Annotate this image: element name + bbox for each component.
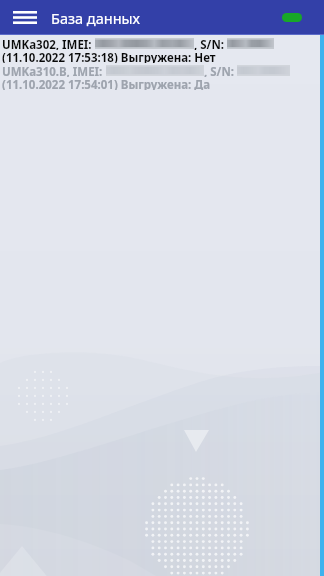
staticText: UMKa310.B, IMEI:: [2, 64, 103, 77]
staticText: База данных: [51, 8, 140, 28]
button[interactable]: Connection status: [282, 13, 302, 22]
staticText: UMKa302, IMEI:: [2, 37, 92, 50]
button[interactable]: Open navigation menu: [8, 1, 42, 34]
button[interactable]: UMKa302, IMEI:: [2, 38, 324, 64]
staticText: (11.10.2022 17:53:18) Выгружена: Нет: [2, 50, 216, 63]
staticText: , S/N:: [204, 64, 234, 77]
button[interactable]: UMKa310.B, IMEI:: [2, 65, 324, 91]
staticText: , S/N:: [194, 37, 224, 50]
staticText: (11.10.2022 17:54:01) Выгружена: Да: [2, 77, 211, 90]
